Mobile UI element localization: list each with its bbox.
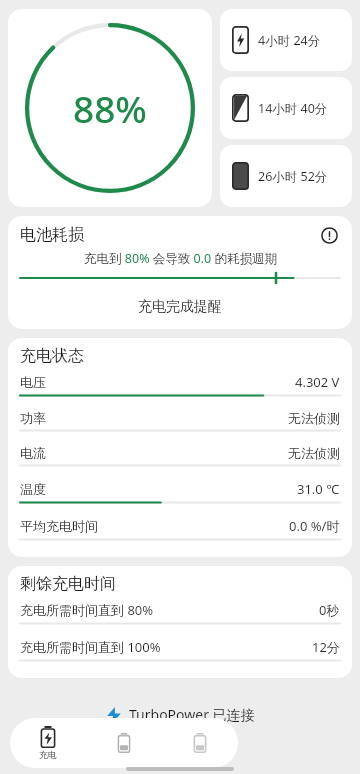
button[interactable]: 26小时 52分 [220,145,352,207]
staticText: 31.0 ℃ [297,480,340,498]
button[interactable]: 充电所需时间直到 80% [12,598,348,631]
button[interactable]: 功率 [12,407,348,438]
staticText: 充电所需时间直到 80% [20,601,154,619]
staticText: 充电状态 [20,346,84,366]
button[interactable]: 统计 [162,718,238,768]
staticText: 充电 [39,749,57,760]
staticText: 电流 [20,445,46,461]
staticText: 0秒 [319,601,340,619]
staticText: 4小时 24分 [258,32,321,49]
button[interactable]: 电池 [86,718,162,768]
staticText: 功率 [20,410,46,426]
staticText: 温度 [20,481,46,497]
button[interactable]: 4小时 24分 [220,9,352,71]
staticText: 无法侦测 [288,410,340,426]
staticText: 充电所需时间直到 100% [20,638,161,656]
button[interactable]: 88% [8,9,212,207]
staticText: 电池耗损 [20,225,84,245]
staticText: 12分 [312,638,340,656]
staticText: 88% [73,83,147,133]
button[interactable]: 信息 [318,224,340,246]
button[interactable]: 14小时 40分 [220,77,352,139]
button[interactable]: 电流 [12,442,348,473]
button[interactable]: 平均充电时间 [12,514,348,547]
staticText: 充电到 80% 会导致 0.0 的耗损週期 [84,250,277,267]
staticText: 14小时 40分 [258,100,328,117]
button[interactable]: 充电到 80% 会导致 0.0 的耗损週期 [12,250,348,287]
button[interactable]: 温度 [12,477,348,510]
staticText: 电压 [20,374,46,390]
staticText: 无法侦测 [288,445,340,461]
staticText: 剩馀充电时间 [20,574,116,594]
staticText: TurboPower 已连接 [129,705,255,724]
staticText: 26小时 52分 [258,168,328,185]
button[interactable]: 充电完成提醒 [12,292,348,322]
staticText: 0.0 %/时 [289,517,340,535]
staticText: 4.302 V [295,373,340,391]
button[interactable]: 电压 [12,370,348,403]
button[interactable]: 充电所需时间直到 100% [12,635,348,668]
staticText: 充电完成提醒 [138,298,222,316]
staticText: 平均充电时间 [20,518,98,534]
button[interactable]: 充电 [10,718,86,768]
